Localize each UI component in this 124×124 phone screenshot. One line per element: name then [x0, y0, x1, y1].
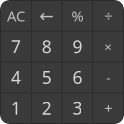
staticText: 3 — [72, 97, 82, 120]
staticText: 5 — [42, 66, 52, 89]
button[interactable]: 6 — [62, 62, 92, 92]
button[interactable]: 8 — [32, 32, 62, 62]
staticText: 9 — [72, 35, 82, 58]
staticText: ÷ — [104, 6, 112, 26]
button[interactable]: + — [93, 93, 123, 123]
button[interactable]: 2 — [32, 93, 62, 123]
staticText: - — [106, 68, 110, 86]
button[interactable]: 5 — [32, 62, 62, 92]
staticText: 1 — [11, 97, 21, 120]
button[interactable]: 4 — [1, 62, 31, 92]
staticText: 8 — [42, 35, 52, 58]
staticText: 6 — [72, 66, 82, 89]
button[interactable]: × — [93, 32, 123, 62]
staticText: 4 — [11, 66, 21, 89]
staticText: ← — [39, 6, 54, 26]
button[interactable]: % — [62, 1, 92, 31]
staticText: AC — [7, 6, 25, 26]
button[interactable]: - — [93, 62, 123, 92]
button[interactable]: 9 — [62, 32, 92, 62]
button[interactable]: Backspace — [32, 1, 62, 31]
staticText: % — [71, 6, 83, 26]
staticText: 2 — [42, 97, 52, 120]
button[interactable]: AC — [1, 1, 31, 31]
button[interactable]: 1 — [1, 93, 31, 123]
staticText: × — [104, 38, 112, 55]
button[interactable]: 7 — [1, 32, 31, 62]
staticText: + — [104, 98, 112, 118]
button[interactable]: 3 — [62, 93, 92, 123]
staticText: 7 — [11, 35, 21, 58]
button[interactable]: ÷ — [93, 1, 123, 31]
